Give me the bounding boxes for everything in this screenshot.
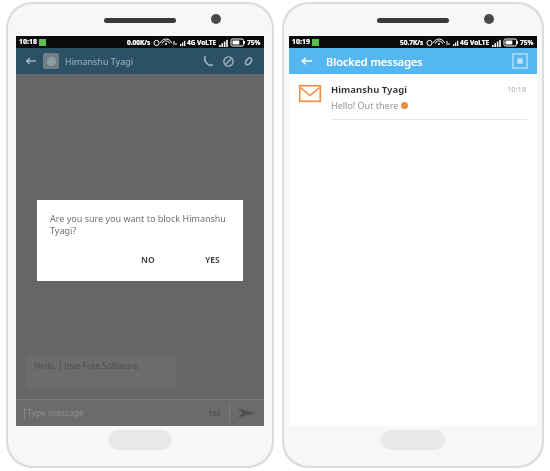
button[interactable]: Back	[22, 52, 40, 70]
button[interactable]: Call	[198, 51, 218, 71]
staticText: Himanshu Tyagi	[331, 83, 408, 96]
staticText: 4G VoLTE	[460, 38, 490, 47]
staticText: Hello! Out there	[331, 99, 401, 111]
staticText: Type message	[27, 407, 208, 419]
staticText: Blocked messages	[326, 54, 511, 69]
button[interactable]: YES	[195, 251, 230, 269]
button[interactable]: Back	[297, 51, 317, 71]
staticText: Hello, I love Free Software.	[34, 360, 140, 372]
staticText: 0.00K/s	[127, 38, 151, 47]
button[interactable]: Attach	[238, 51, 258, 71]
button[interactable]: NO	[131, 251, 165, 269]
staticText: Are you sure you want to block Himanshu …	[50, 212, 230, 237]
button[interactable]: Block	[218, 51, 238, 71]
staticText: NO	[141, 254, 155, 266]
button[interactable]: Send	[230, 400, 264, 426]
staticText: 10:18	[19, 37, 37, 47]
staticText: Himanshu Tyagi	[65, 55, 198, 67]
button[interactable]: Select	[511, 52, 529, 70]
staticText: 10:19	[292, 37, 310, 47]
staticText: 50.7K/s	[400, 38, 424, 47]
staticText: 75%	[520, 38, 534, 47]
staticText: 75%	[247, 38, 261, 47]
staticText: YES	[205, 254, 220, 266]
button[interactable]: Himanshu Tyagi	[289, 74, 537, 119]
staticText: 160	[208, 408, 221, 418]
staticText: 4G VoLTE	[187, 38, 217, 47]
staticText: 10:18	[507, 84, 527, 94]
